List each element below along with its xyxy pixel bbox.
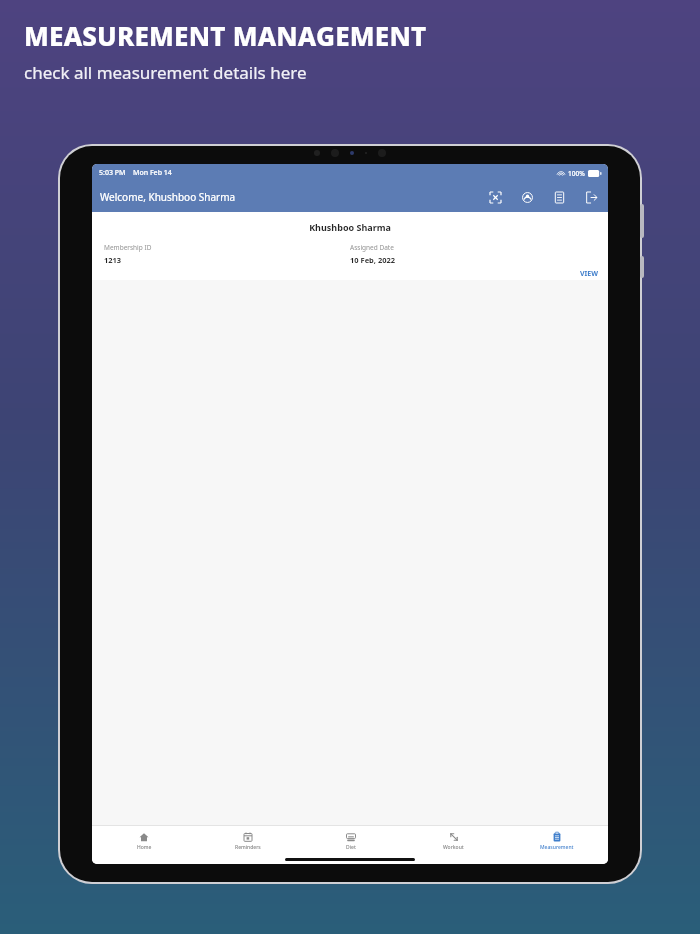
button[interactable]: Workout (402, 830, 505, 853)
staticText: Welcome, Khushboo Sharma (100, 190, 236, 204)
staticText: Home (137, 844, 152, 851)
button[interactable]: Reminders (196, 830, 299, 853)
button[interactable]: Account (518, 188, 536, 206)
staticText: 1213 (104, 255, 122, 265)
button[interactable]: Home (92, 830, 196, 853)
staticText: Diet (346, 844, 356, 851)
staticText: Membership ID (104, 243, 152, 252)
staticText: Workout (443, 844, 464, 851)
button[interactable]: Diet (299, 830, 402, 853)
button[interactable]: Measurement (505, 830, 608, 853)
button[interactable]: VIEW (580, 269, 598, 279)
staticText: VIEW (580, 269, 598, 279)
staticText: Mon Feb 14 (133, 168, 172, 178)
button[interactable]: Scan (486, 188, 504, 206)
staticText: check all measurement details here (24, 61, 307, 84)
button[interactable]: Khushboo Sharma (92, 212, 608, 280)
staticText: 100% (568, 169, 585, 178)
staticText: 5:03 PM (99, 168, 126, 178)
staticText: Reminders (235, 844, 261, 851)
staticText: Assigned Date (350, 243, 394, 252)
staticText: Measurement (540, 844, 574, 851)
staticText: 10 Feb, 2022 (350, 255, 396, 265)
button[interactable]: Logout (582, 188, 600, 206)
staticText: Khushboo Sharma (92, 221, 608, 233)
button[interactable]: List (550, 188, 568, 206)
staticText: MEASUREMENT MANAGEMENT (24, 18, 427, 53)
